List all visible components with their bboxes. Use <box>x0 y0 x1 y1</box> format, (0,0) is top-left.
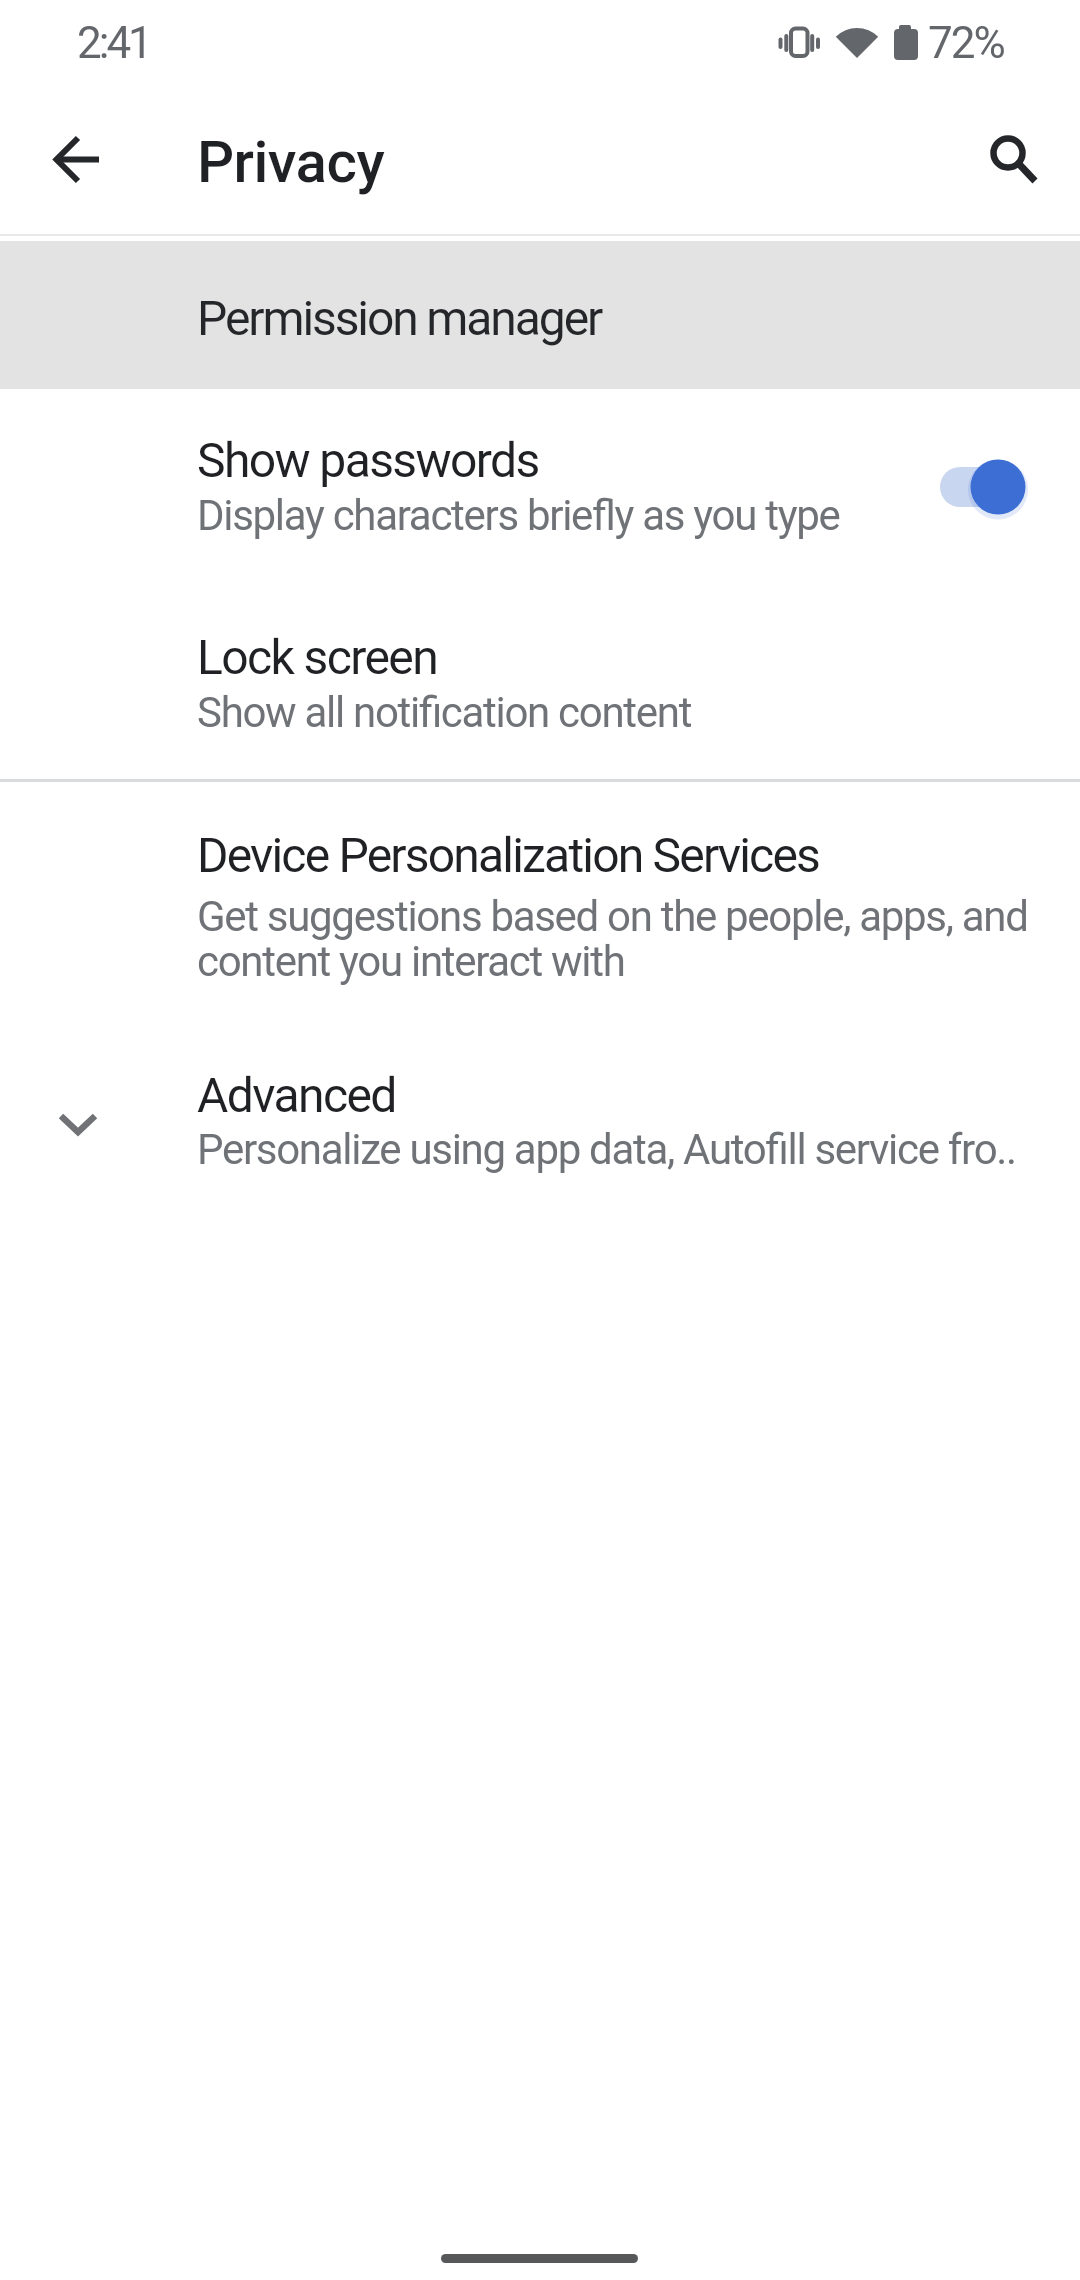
staticText: content you interact with <box>197 937 625 986</box>
button[interactable] <box>962 107 1058 203</box>
staticText: Get suggestions based on the people, app… <box>197 892 1028 941</box>
button[interactable] <box>30 110 126 206</box>
staticText: Permission manager <box>197 290 602 346</box>
staticText: Device Personalization Services <box>197 827 820 883</box>
button[interactable]: Device Personalization Services <box>0 806 1080 1010</box>
staticText: 72% <box>928 17 1004 69</box>
staticText: Show passwords <box>197 432 539 488</box>
staticText: Personalize using app data, Autofill ser… <box>197 1125 1016 1174</box>
button[interactable]: Advanced <box>0 1046 1080 1198</box>
button[interactable]: Show passwords <box>0 412 1080 564</box>
staticText: Show all notification content <box>197 688 692 737</box>
staticText: Advanced <box>197 1067 396 1123</box>
button[interactable]: Lock screen <box>0 608 1080 760</box>
staticText: Display characters briefly as you type <box>197 491 840 540</box>
button[interactable]: Permission manager <box>0 241 1080 389</box>
staticText: Lock screen <box>197 629 438 685</box>
staticText: Privacy <box>197 128 385 196</box>
staticText: 2:41 <box>77 17 150 69</box>
